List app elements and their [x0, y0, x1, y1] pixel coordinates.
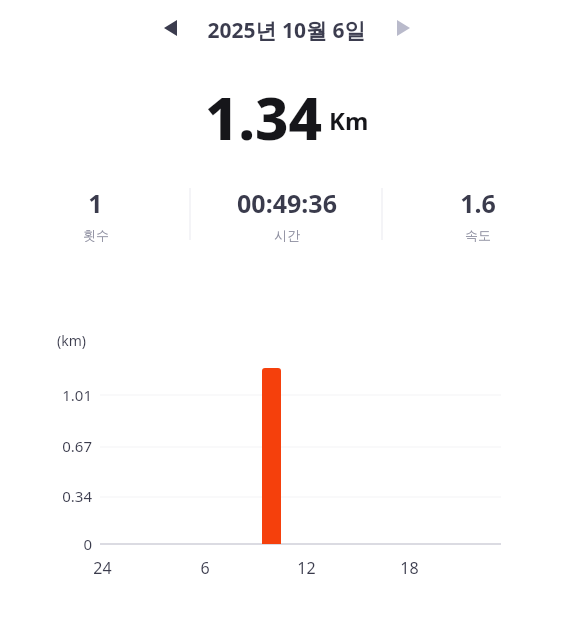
staticText: 1.6 — [460, 186, 496, 220]
staticText: 속도 — [465, 227, 491, 243]
button[interactable]: Next day — [390, 15, 416, 41]
button[interactable]: Previous day — [157, 15, 183, 41]
button[interactable]: 00:49:36 — [191, 182, 382, 248]
button[interactable]: Daily distance chart — [0, 0, 573, 640]
button[interactable]: 2025년 10월 6일 — [196, 14, 377, 46]
staticText: 횟수 — [83, 227, 109, 243]
button[interactable]: 1.6 — [382, 182, 573, 248]
staticText: 0 — [83, 534, 92, 554]
staticText: 18 — [400, 557, 419, 579]
staticText: Km — [329, 104, 369, 137]
staticText: 0.34 — [62, 486, 92, 506]
staticText: (km) — [57, 331, 86, 350]
staticText: 시간 — [274, 227, 300, 243]
staticText: 1 — [88, 186, 103, 220]
staticText: 2025년 10월 6일 — [207, 16, 366, 45]
staticText: 00:49:36 — [237, 186, 337, 220]
staticText: 12 — [297, 557, 316, 579]
staticText: 1.01 — [62, 385, 92, 405]
staticText: 24 — [93, 557, 112, 579]
staticText: 0.67 — [62, 436, 92, 456]
staticText: 1.34 — [205, 78, 323, 142]
button[interactable]: 1 — [0, 182, 191, 248]
staticText: 6 — [200, 557, 210, 579]
